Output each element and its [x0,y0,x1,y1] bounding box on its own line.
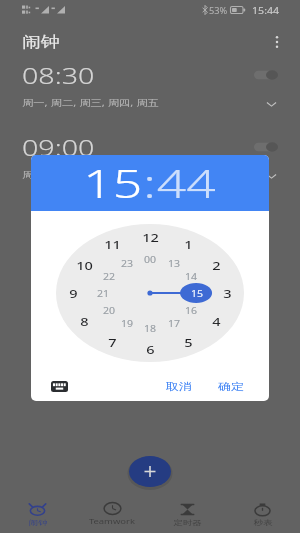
button[interactable]: 取消 [163,376,195,397]
button[interactable]: Switch to keyboard input [49,378,69,394]
staticText: 取消 [166,380,192,393]
staticText: 14 [184,271,198,282]
button[interactable]: 秒表 [225,495,300,533]
button[interactable]: 闹钟 [0,495,75,533]
staticText: 7 [108,335,117,350]
button[interactable]: 确定 [215,376,247,397]
staticText: 19 [120,318,134,329]
staticText: 6 [146,342,155,357]
staticText: 16 [184,305,198,316]
button[interactable]: Add alarm [129,456,171,487]
button[interactable]: 08:30 [0,54,300,126]
staticText: 8 [80,314,89,329]
button[interactable]: 定时器 [150,495,225,533]
staticText: 18 [143,323,157,334]
staticText: 4 [212,314,221,329]
staticText: 08:30 [22,60,95,90]
staticText: 22 [102,271,116,282]
staticText: 15 [190,288,204,299]
staticText: 周六, 周日 [22,169,74,181]
staticText: 9 [69,286,78,301]
staticText: 13 [167,258,181,269]
staticText: : [143,157,157,209]
button[interactable]: 09:00 [0,126,300,198]
staticText: 10 [76,258,93,273]
button[interactable]: 15 [83,157,143,209]
staticText: 闹钟 [28,518,47,527]
staticText: 17 [167,318,181,329]
staticText: 12 [142,230,159,245]
staticText: 53% [209,5,227,16]
staticText: 23 [120,258,134,269]
staticText: 11 [104,237,121,252]
staticText: 确定 [218,380,244,393]
staticText: 09:00 [22,132,95,162]
staticText: 20 [102,305,116,316]
staticText: 周一, 周二, 周三, 周四, 周五 [22,97,159,109]
staticText: 秒表 [254,518,272,527]
staticText: 1 [184,237,193,252]
staticText: 00 [143,254,157,265]
staticText: 3 [223,286,232,301]
staticText: 5 [184,335,193,350]
button[interactable]: More options [260,25,294,59]
button[interactable]: 44 [157,157,217,209]
staticText: 2 [212,258,221,273]
staticText: 定时器 [173,518,202,527]
staticText: Teamwork [89,517,136,527]
staticText: 21 [96,288,110,299]
staticText: 15:44 [252,4,280,16]
staticText: 闹钟 [22,33,59,52]
button[interactable]: Teamwork [75,495,150,533]
